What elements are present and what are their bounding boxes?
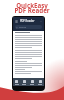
- button[interactable]: Menu: [15, 20, 18, 23]
- staticText: PDF Reader: [20, 19, 35, 23]
- staticText: QuickEasy PDF Reader: [14, 1, 50, 15]
- button[interactable]: More options: [40, 20, 42, 22]
- staticText: Search: [19, 26, 27, 29]
- button[interactable]: Tab 1: [13, 78, 20, 86]
- button[interactable]: Tab 2: [20, 78, 28, 86]
- button[interactable]: Tab 4: [36, 78, 44, 86]
- button[interactable]: Tab 3: [28, 78, 36, 86]
- button[interactable]: Search: [15, 25, 42, 29]
